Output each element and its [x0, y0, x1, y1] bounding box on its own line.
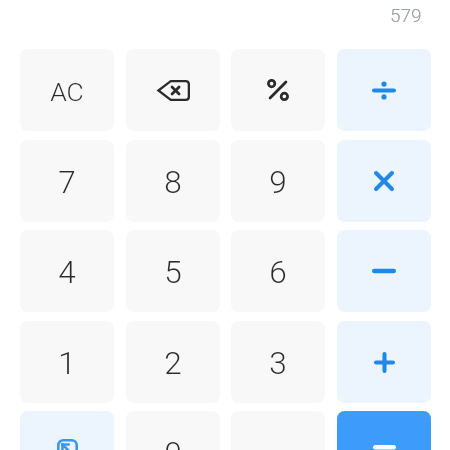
staticText: 6: [269, 254, 287, 291]
button[interactable]: Multiply: [337, 140, 431, 222]
staticText: 5: [164, 254, 182, 291]
staticText: 3: [269, 345, 287, 382]
button[interactable]: Plus: [337, 321, 431, 403]
staticText: 4: [58, 254, 76, 291]
button[interactable]: 7: [20, 140, 114, 222]
button[interactable]: 8: [126, 140, 220, 222]
button[interactable]: Equals: [337, 411, 431, 450]
button[interactable]: 5: [126, 230, 220, 312]
button[interactable]: AC: [20, 49, 114, 131]
staticText: 7: [58, 164, 76, 201]
staticText: AC: [50, 76, 84, 107]
button[interactable]: 6: [231, 230, 325, 312]
button[interactable]: Percent: [231, 49, 325, 131]
button[interactable]: 9: [231, 140, 325, 222]
button[interactable]: 4: [20, 230, 114, 312]
staticText: 8: [164, 164, 182, 201]
staticText: 2: [164, 345, 182, 382]
button[interactable]: 3: [231, 321, 325, 403]
staticText: 579: [390, 4, 422, 26]
button[interactable]: 1: [20, 321, 114, 403]
staticText: 0: [164, 435, 182, 450]
button[interactable]: 0: [126, 411, 220, 450]
staticText: 1: [58, 345, 76, 382]
staticText: 9: [269, 164, 287, 201]
button[interactable]: Backspace: [126, 49, 220, 131]
button[interactable]: Minus: [337, 230, 431, 312]
button[interactable]: Divide: [337, 49, 431, 131]
button[interactable]: 2: [126, 321, 220, 403]
button[interactable]: Expand: [20, 411, 114, 450]
